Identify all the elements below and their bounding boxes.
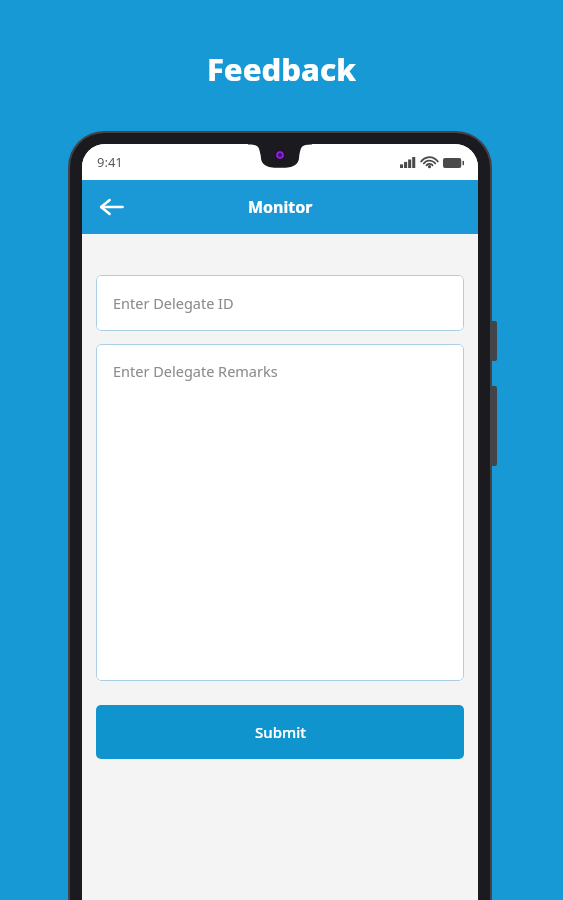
staticText: Monitor xyxy=(248,196,313,218)
button[interactable]: Submit xyxy=(96,705,464,759)
staticText: Submit xyxy=(255,722,306,742)
staticText: Enter Delegate Remarks xyxy=(113,361,278,381)
button[interactable]: Enter Delegate Remarks xyxy=(96,344,464,681)
staticText: Enter Delegate ID xyxy=(113,293,234,313)
staticText: 9:41 xyxy=(97,153,123,171)
button[interactable]: Back xyxy=(89,185,133,229)
button[interactable]: Enter Delegate ID xyxy=(96,275,464,331)
staticText: Feedback xyxy=(207,48,357,90)
